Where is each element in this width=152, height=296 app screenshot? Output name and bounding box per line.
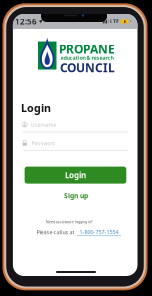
staticText: PROPANE [59, 41, 115, 57]
staticText: 12:56 [15, 16, 37, 27]
button[interactable]: Login [25, 167, 126, 184]
staticText: Please call us at [36, 229, 74, 236]
staticText: Username [30, 121, 56, 128]
staticText: Need assistance logging in? [46, 219, 93, 224]
staticText: Login [21, 101, 51, 115]
staticText: 4 [123, 19, 125, 24]
staticText: COUNCIL [60, 60, 115, 75]
staticText: Password [31, 140, 55, 147]
staticText: LTE [110, 18, 119, 25]
button[interactable]: 1-800-757-1554 [77, 228, 121, 236]
staticText: Login [65, 170, 86, 180]
staticText: education & research [60, 54, 113, 61]
staticText: Sign up [64, 191, 88, 200]
button[interactable]: Sign up [60, 191, 92, 200]
staticText: 1-800-757-1554 [79, 228, 118, 235]
